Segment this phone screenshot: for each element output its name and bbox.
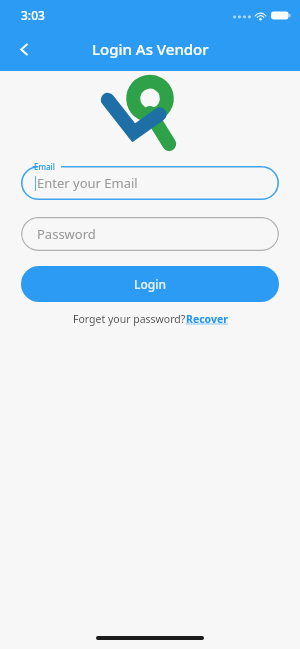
button[interactable]: Back <box>6 31 42 67</box>
staticText: Login As Vendor <box>92 39 209 59</box>
staticText: Enter your Email <box>37 174 138 192</box>
staticText: Recover <box>186 312 228 326</box>
staticText: 3:03 <box>21 7 45 23</box>
staticText: Login <box>134 276 166 292</box>
button[interactable]: Login <box>21 266 279 302</box>
staticText: Email <box>34 161 55 172</box>
button[interactable] <box>21 166 279 200</box>
staticText: Forget your password? <box>73 312 186 326</box>
button[interactable]: Recover <box>186 312 228 326</box>
button[interactable]: Password <box>21 217 279 251</box>
staticText: Password <box>37 225 96 243</box>
